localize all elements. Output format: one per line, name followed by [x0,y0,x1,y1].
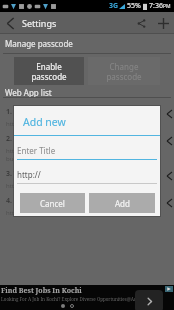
button[interactable]: Delete [162,134,174,148]
staticText: https://paytm.com/ budget [6,147,61,163]
button[interactable]: Change passcode [88,57,160,85]
staticText: Find Best Jobs In Kochi [1,286,82,296]
staticText: Add [115,198,130,209]
button[interactable]: 4. Gmail [4,192,174,219]
button[interactable]: Next [135,290,163,310]
button[interactable]: Delete [162,169,174,183]
button[interactable]: 1. Practo [4,103,174,130]
staticText: Add new [23,115,66,129]
staticText: Settings [22,17,57,29]
staticText: http:// [17,169,41,180]
staticText: 2. Paytm [6,134,37,144]
button[interactable]: Enable passcode [14,57,84,85]
staticText: https://m.timesofindia.com [6,182,83,190]
staticText: Manage passcode [5,38,73,49]
button[interactable]: Share [131,12,151,34]
staticText: Web App list [5,87,52,98]
staticText: 3. Times Of India [6,169,65,179]
staticText: 7:36 [149,1,163,11]
staticText: Enable passcode [31,61,67,82]
staticText: Cancel [40,198,65,209]
button[interactable]: 2. Paytm [4,130,174,165]
staticText: 55% [127,1,141,11]
staticText: 1. Practo [6,107,37,117]
staticText: PM [163,3,171,10]
staticText: Looking For A Job In Kochi? Explore Dive… [1,296,145,302]
button[interactable]: 3. Times Of India [4,165,174,192]
button[interactable]: Cancel [20,193,85,213]
staticText: https://mail.google.com [6,209,74,217]
button[interactable]: Back [0,12,20,34]
staticText: Enter Title [17,145,56,156]
button[interactable]: Delete [162,107,174,121]
button[interactable]: Add [89,193,155,213]
staticText: https://www.practo.com [6,120,75,128]
staticText: 3G [109,1,119,11]
staticText: Change passcode [106,61,142,82]
staticText: 4. Gmail [6,196,35,206]
button[interactable]: Delete [162,196,174,210]
button[interactable]: Add [152,12,174,34]
